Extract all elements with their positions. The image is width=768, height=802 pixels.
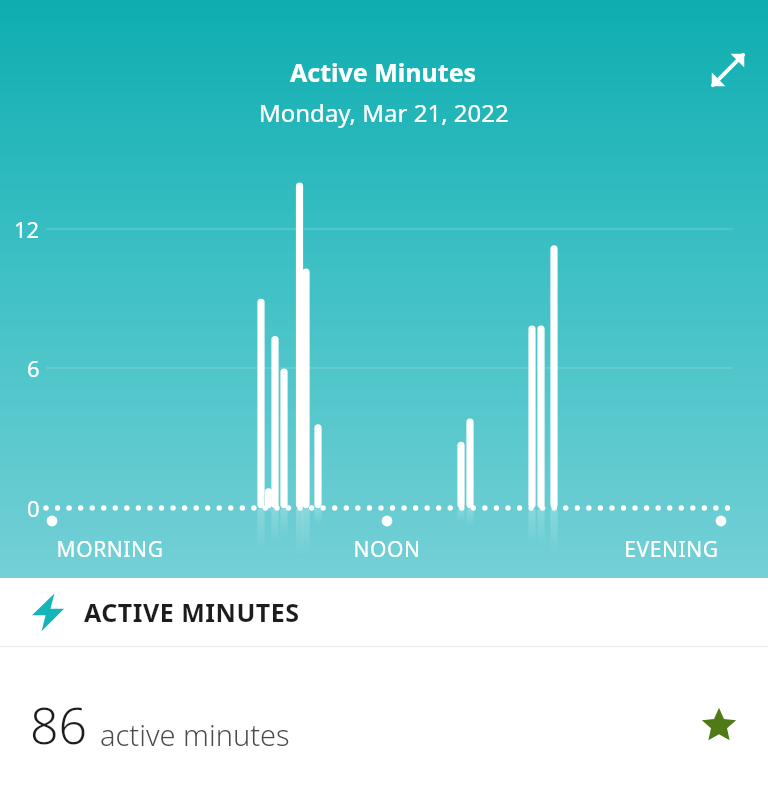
button[interactable]: 86 xyxy=(0,647,768,802)
staticText: EVENING xyxy=(624,535,719,564)
button[interactable]: Goal achieved xyxy=(696,702,742,748)
staticText: Monday, Mar 21, 2022 xyxy=(259,96,509,129)
button[interactable]: ACTIVE MINUTES xyxy=(0,578,768,646)
staticText: 0 xyxy=(27,493,40,523)
staticText: NOON xyxy=(353,535,421,564)
staticText: ACTIVE MINUTES xyxy=(84,595,300,629)
staticText: Active Minutes xyxy=(290,55,477,89)
staticText: MORNING xyxy=(56,535,164,564)
staticText: active minutes xyxy=(100,715,290,754)
button[interactable]: Expand chart xyxy=(702,44,754,96)
staticText: 12 xyxy=(14,214,40,244)
staticText: 6 xyxy=(27,353,40,383)
staticText: 86 xyxy=(30,691,88,759)
